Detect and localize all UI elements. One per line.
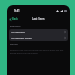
other: Back [9, 18, 12, 21]
button[interactable]: My Extension Groups [9, 35, 68, 41]
staticText: Last Seen [32, 17, 45, 21]
staticText: Back [12, 17, 18, 21]
button[interactable]: Back [7, 16, 19, 22]
staticText: Extensions [10, 25, 21, 28]
staticText: 9:41 [14, 9, 20, 13]
button[interactable]: My Extensions [9, 29, 68, 35]
staticText: My Extensions [11, 31, 26, 34]
staticText: Security [10, 43, 18, 46]
staticText: My Extension Groups [11, 37, 32, 40]
staticText: Extensions can read and change site data… [10, 49, 66, 55]
